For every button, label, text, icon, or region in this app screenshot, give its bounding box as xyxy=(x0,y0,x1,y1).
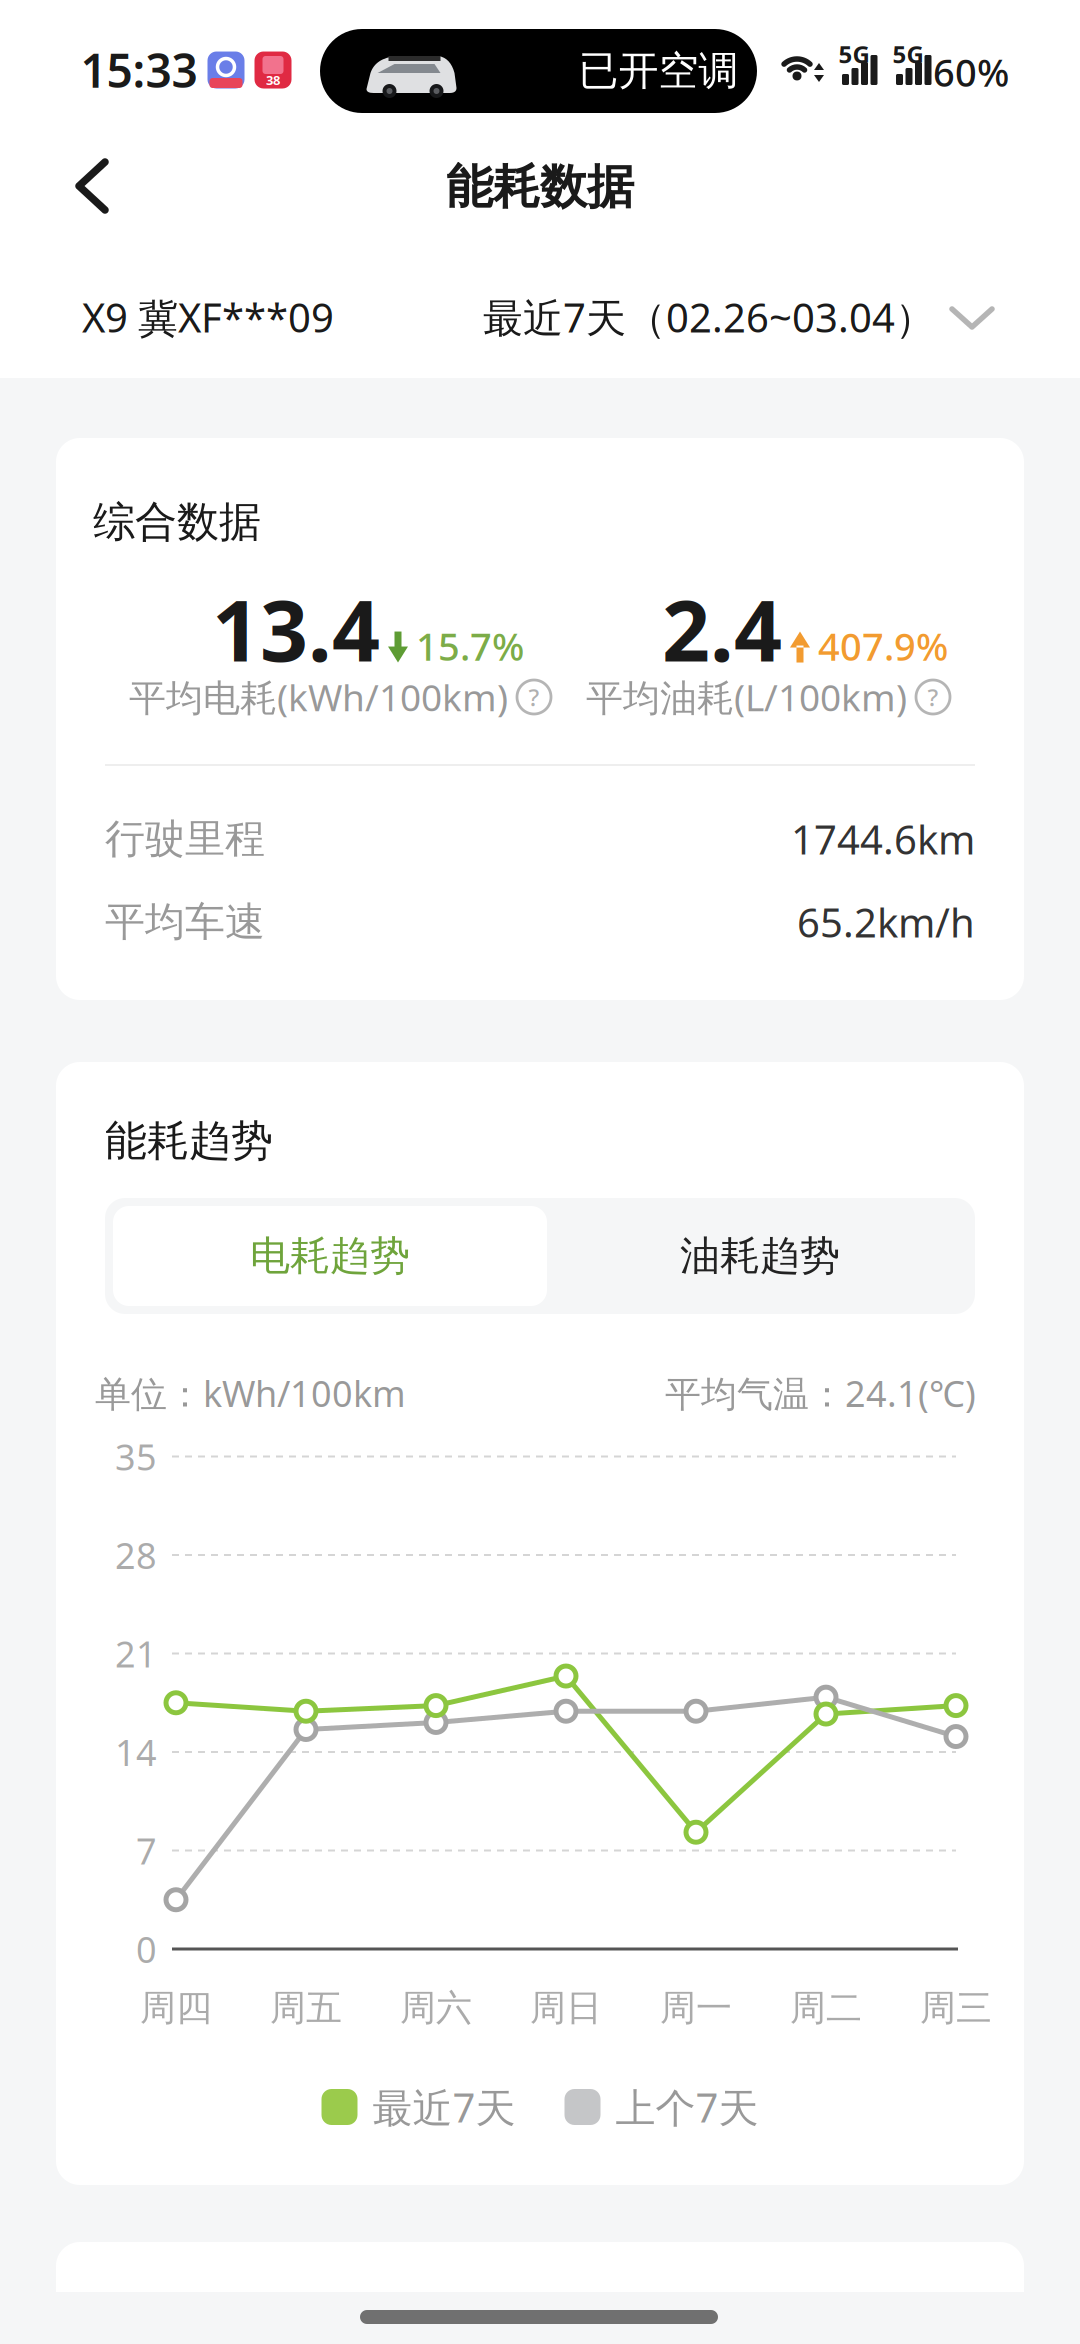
button[interactable] xyxy=(75,159,109,213)
button[interactable]: X9 冀XF***09 xyxy=(82,290,482,344)
staticText: 最近7天 xyxy=(372,2080,515,2134)
staticText: 0 xyxy=(136,1924,157,1973)
staticText: 平均油耗(L/100km) xyxy=(586,672,907,722)
staticText: 5G xyxy=(838,38,869,70)
staticText: 周三 xyxy=(920,1985,992,2031)
staticText: 38 xyxy=(266,71,280,89)
staticText: 已开空调 xyxy=(578,46,738,96)
staticText: 能耗数据 xyxy=(446,157,634,217)
staticText: ? xyxy=(528,681,539,713)
staticText: 13.4 xyxy=(212,572,380,686)
staticText: ? xyxy=(927,681,938,713)
staticText: 平均电耗(kWh/100km) xyxy=(129,672,508,722)
staticText: 5G xyxy=(892,38,923,70)
staticText: 平均车速 xyxy=(105,897,265,947)
staticText: 14 xyxy=(115,1727,157,1776)
staticText: 周日 xyxy=(530,1985,602,2031)
staticText: 综合数据 xyxy=(93,495,261,548)
staticText: 407.9% xyxy=(818,620,948,672)
button[interactable]: ? xyxy=(916,680,950,714)
staticText: 21 xyxy=(115,1629,157,1678)
staticText: 35 xyxy=(115,1432,157,1481)
button[interactable]: 已开空调 xyxy=(320,29,757,113)
staticText: 周一 xyxy=(660,1985,732,2031)
staticText: 65.2km/h xyxy=(797,895,975,949)
staticText: 能耗趋势 xyxy=(105,1114,273,1167)
staticText: 1744.6km xyxy=(791,812,975,866)
button[interactable]: 最近7天（02.26~03.04） xyxy=(415,290,995,344)
staticText: 周六 xyxy=(400,1985,472,2031)
staticText: 7 xyxy=(136,1826,157,1875)
button[interactable]: ? xyxy=(517,680,551,714)
staticText: 油耗趋势 xyxy=(680,1231,840,1281)
staticText: 周四 xyxy=(140,1985,212,2031)
staticText: 周五 xyxy=(270,1985,342,2031)
button[interactable]: 油耗趋势 xyxy=(550,1206,970,1306)
staticText: 最近7天（02.26~03.04） xyxy=(483,290,935,344)
staticText: 2.4 xyxy=(662,572,782,686)
button[interactable]: 电耗趋势 xyxy=(113,1206,547,1306)
staticText: 周二 xyxy=(790,1985,862,2031)
staticText: 60% xyxy=(933,46,1009,98)
staticText: 单位：kWh/100km xyxy=(95,1368,406,1417)
staticText: 15.7% xyxy=(416,620,524,672)
staticText: 28 xyxy=(115,1530,157,1579)
staticText: 电耗趋势 xyxy=(250,1231,410,1281)
staticText: X9 冀XF***09 xyxy=(82,290,334,344)
staticText: 15:33 xyxy=(80,39,197,101)
staticText: 行驶里程 xyxy=(105,814,265,864)
staticText: 上个7天 xyxy=(615,2080,758,2134)
staticText: 平均气温：24.1(℃) xyxy=(665,1368,976,1417)
